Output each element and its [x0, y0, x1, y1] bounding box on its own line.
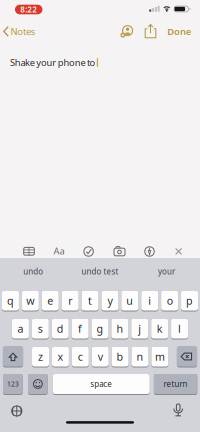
- button[interactable]: undo test: [68, 261, 132, 281]
- staticText: f: [78, 321, 82, 336]
- button[interactable]: undo: [3, 261, 63, 281]
- button[interactable]: v: [92, 346, 109, 367]
- button[interactable]: Delete: [177, 346, 197, 367]
- button[interactable]: a: [12, 318, 29, 339]
- staticText: g: [96, 321, 103, 336]
- button[interactable]: b: [112, 346, 129, 367]
- staticText: c: [78, 349, 83, 364]
- button[interactable]: Markup: [137, 240, 161, 262]
- staticText: your: [158, 266, 175, 277]
- staticText: 8:22: [20, 4, 37, 15]
- button[interactable]: t: [81, 290, 98, 311]
- button[interactable]: 123: [3, 374, 23, 395]
- button[interactable]: l: [171, 318, 188, 339]
- button[interactable]: z: [32, 346, 49, 367]
- staticText: undo: [23, 266, 43, 277]
- staticText: v: [98, 349, 103, 364]
- staticText: t: [88, 293, 92, 308]
- staticText: Notes: [10, 25, 35, 38]
- staticText: p: [186, 293, 193, 308]
- staticText: l: [178, 321, 181, 336]
- button[interactable]: s: [32, 318, 49, 339]
- staticText: Done: [167, 25, 191, 38]
- staticText: m: [155, 349, 165, 364]
- button[interactable]: f: [72, 318, 89, 339]
- staticText: q: [7, 293, 14, 308]
- staticText: 123: [7, 380, 19, 388]
- button[interactable]: Insert photo: [107, 240, 131, 262]
- staticText: y: [107, 293, 112, 308]
- staticText: i: [148, 293, 151, 308]
- button[interactable]: Insert table: [17, 240, 41, 262]
- button[interactable]: c: [72, 346, 89, 367]
- button[interactable]: Text format: [47, 240, 71, 262]
- button[interactable]: Dismiss toolbar: [167, 240, 191, 262]
- staticText: d: [57, 321, 64, 336]
- staticText: Aa: [53, 245, 64, 257]
- staticText: e: [47, 293, 53, 308]
- button[interactable]: o: [161, 290, 178, 311]
- button[interactable]: r: [62, 290, 79, 311]
- button[interactable]: your: [137, 261, 197, 281]
- button[interactable]: d: [52, 318, 69, 339]
- button[interactable]: space: [53, 374, 150, 395]
- button[interactable]: Share: [139, 20, 161, 42]
- button[interactable]: j: [131, 318, 148, 339]
- staticText: r: [68, 293, 72, 308]
- staticText: n: [136, 349, 143, 364]
- button[interactable]: Shift: [3, 346, 23, 367]
- staticText: space: [90, 379, 112, 389]
- button[interactable]: u: [121, 290, 138, 311]
- staticText: k: [157, 321, 163, 336]
- button[interactable]: Back to Notes: [0, 21, 44, 41]
- button[interactable]: k: [151, 318, 168, 339]
- button[interactable]: n: [131, 346, 148, 367]
- staticText: s: [38, 321, 43, 336]
- button[interactable]: Checklist: [77, 240, 101, 262]
- button[interactable]: g: [91, 318, 108, 339]
- button[interactable]: y: [101, 290, 118, 311]
- button[interactable]: i: [141, 290, 158, 311]
- button[interactable]: q: [2, 290, 19, 311]
- staticText: b: [117, 349, 124, 364]
- button[interactable]: h: [111, 318, 128, 339]
- button[interactable]: e: [42, 290, 59, 311]
- button[interactable]: m: [151, 346, 168, 367]
- staticText: j: [138, 321, 141, 336]
- staticText: return: [164, 379, 188, 389]
- button[interactable]: w: [22, 290, 39, 311]
- button[interactable]: Done: [162, 22, 196, 40]
- staticText: undo test: [81, 266, 118, 277]
- staticText: o: [167, 293, 173, 308]
- staticText: a: [17, 321, 23, 336]
- button[interactable]: x: [52, 346, 69, 367]
- button[interactable]: return: [154, 374, 197, 395]
- button[interactable]: Emoji: [28, 374, 48, 395]
- button[interactable]: Dictation: [165, 397, 191, 423]
- staticText: w: [26, 293, 34, 308]
- button[interactable]: Share note with people: [116, 20, 138, 42]
- button[interactable]: p: [181, 290, 198, 311]
- staticText: Shake your phone to: [10, 56, 96, 69]
- staticText: x: [57, 349, 63, 364]
- staticText: h: [116, 321, 123, 336]
- staticText: u: [126, 293, 133, 308]
- button[interactable]: Next keyboard: [4, 398, 30, 424]
- staticText: z: [38, 349, 43, 364]
